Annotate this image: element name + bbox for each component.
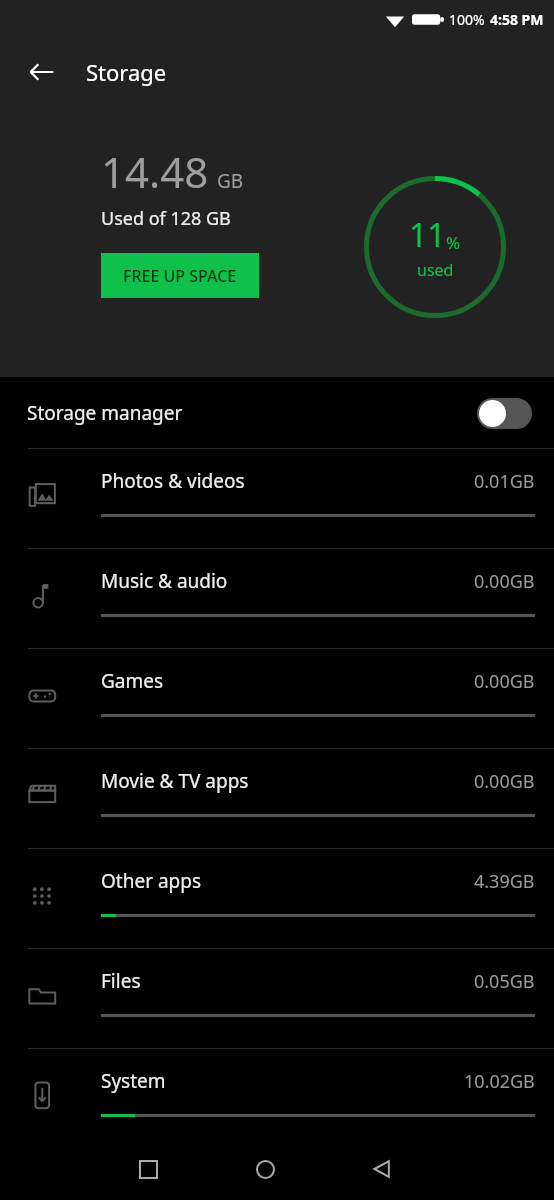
button[interactable]: Movie & TV apps xyxy=(0,749,554,849)
staticText: 100% xyxy=(449,10,485,29)
button[interactable]: Back xyxy=(18,48,66,96)
staticText: 11 xyxy=(409,213,446,257)
button[interactable]: Other apps xyxy=(0,849,554,949)
button[interactable]: Music & audio xyxy=(0,549,554,649)
staticText: Used of 128 GB xyxy=(101,206,231,231)
button[interactable]: Recents xyxy=(124,1145,172,1193)
staticText: 14.48 xyxy=(101,143,209,200)
staticText: Photos & videos xyxy=(101,468,245,494)
button[interactable]: FREE UP SPACE xyxy=(101,253,259,298)
staticText: 4.39GB xyxy=(474,869,535,894)
button[interactable]: System xyxy=(0,1049,554,1149)
staticText: Files xyxy=(101,968,141,994)
staticText: 0.00GB xyxy=(474,669,535,694)
staticText: 0.01GB xyxy=(474,469,535,494)
staticText: FREE UP SPACE xyxy=(123,265,237,287)
staticText: Other apps xyxy=(101,868,202,894)
button[interactable]: Files xyxy=(0,949,554,1049)
staticText: Movie & TV apps xyxy=(101,768,249,794)
staticText: System xyxy=(101,1068,166,1094)
button[interactable]: Storage manager xyxy=(0,377,554,449)
staticText: GB xyxy=(217,168,244,194)
staticText: 10.02GB xyxy=(464,1069,535,1094)
staticText: 0.05GB xyxy=(474,969,535,994)
staticText: 4:58 PM xyxy=(490,10,544,29)
button[interactable]: Games xyxy=(0,649,554,749)
staticText: % xyxy=(446,231,461,254)
staticText: Music & audio xyxy=(101,568,228,594)
button[interactable]: Photos & videos xyxy=(0,449,554,549)
button[interactable]: Back xyxy=(358,1145,406,1193)
staticText: Storage manager xyxy=(27,400,183,426)
staticText: Storage xyxy=(86,57,167,87)
staticText: 0.00GB xyxy=(474,769,535,794)
staticText: 0.00GB xyxy=(474,569,535,594)
staticText: Games xyxy=(101,668,164,694)
button[interactable]: Home xyxy=(241,1145,289,1193)
staticText: used xyxy=(417,259,454,281)
